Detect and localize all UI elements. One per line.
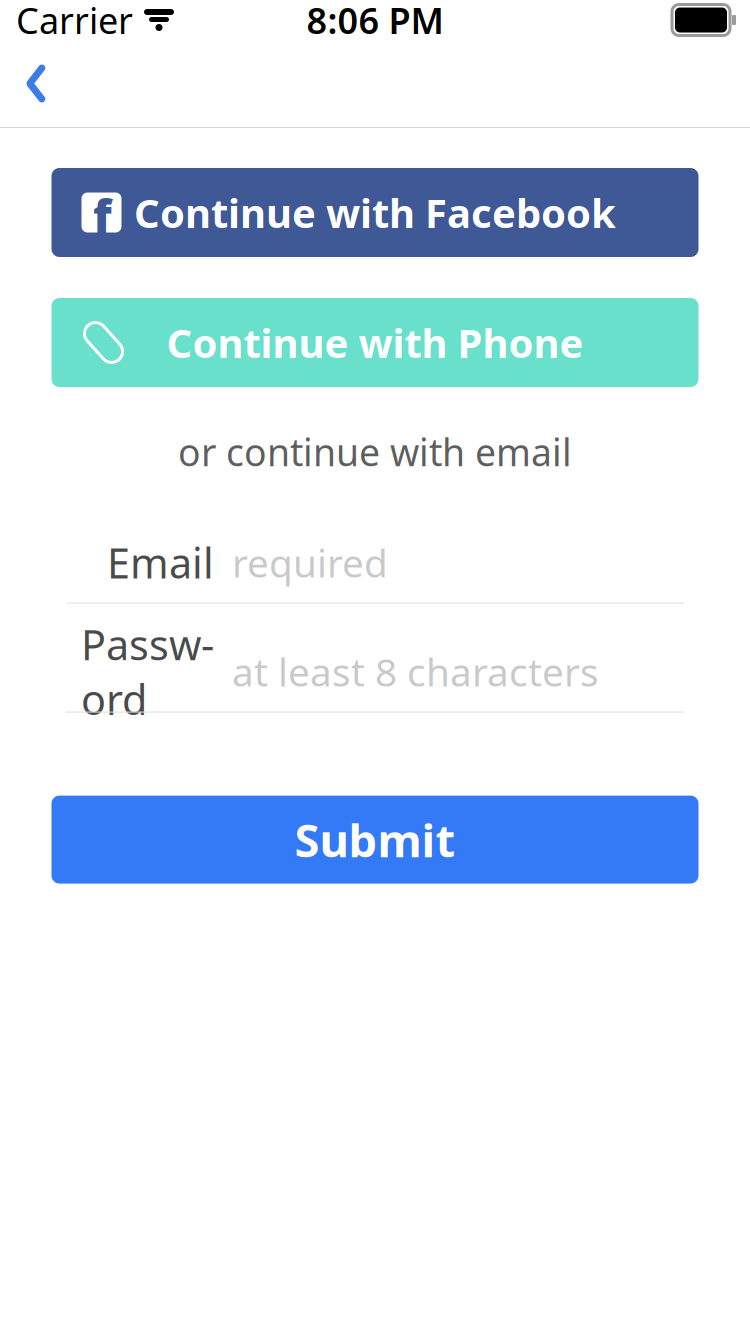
button[interactable]: Password <box>66 646 684 713</box>
staticText: required <box>232 537 388 588</box>
staticText: Submit <box>294 809 455 870</box>
staticText: Email <box>107 535 214 590</box>
staticText: Password <box>81 617 214 726</box>
staticText: Carrier <box>16 0 133 44</box>
button[interactable]: f <box>51 168 698 257</box>
staticText: Continue with Phone <box>166 316 583 369</box>
staticText: at least 8 characters <box>232 646 599 697</box>
staticText: f <box>93 185 112 246</box>
staticText: or continue with email <box>178 427 572 477</box>
staticText: 8:06 PM <box>306 0 443 44</box>
staticText: Continue with Facebook <box>134 186 616 239</box>
button[interactable]: Submit <box>51 796 698 884</box>
button[interactable]: Email <box>66 537 684 604</box>
button[interactable]: Back <box>0 45 72 121</box>
button[interactable]: Continue with Phone <box>51 298 698 387</box>
